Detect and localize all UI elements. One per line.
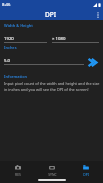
staticText: RES: [15, 172, 21, 177]
staticText: 5.0: [4, 57, 11, 63]
button[interactable]: 1920: [4, 35, 47, 41]
staticText: Width & Height: [4, 23, 33, 28]
button[interactable]: RES: [0, 165, 35, 177]
staticText: 8:46: [2, 2, 11, 8]
staticText: SYNC: [48, 172, 57, 177]
button[interactable]: SYNC: [35, 165, 69, 177]
staticText: DPI: [83, 172, 89, 177]
button[interactable]: × 1080: [52, 35, 99, 41]
staticText: Information: [4, 74, 28, 79]
staticText: 1920: [4, 35, 14, 41]
button[interactable]: More options: [92, 9, 103, 20]
staticText: Input pixel count of the width and heigh…: [4, 81, 103, 92]
staticText: × 1080: [52, 35, 66, 41]
staticText: DPI: [45, 10, 57, 19]
button[interactable]: 5.0: [4, 57, 11, 63]
button[interactable]: DPI: [69, 165, 103, 177]
button[interactable]: Calculate DPI: [84, 54, 100, 70]
staticText: Inches: [4, 45, 17, 50]
